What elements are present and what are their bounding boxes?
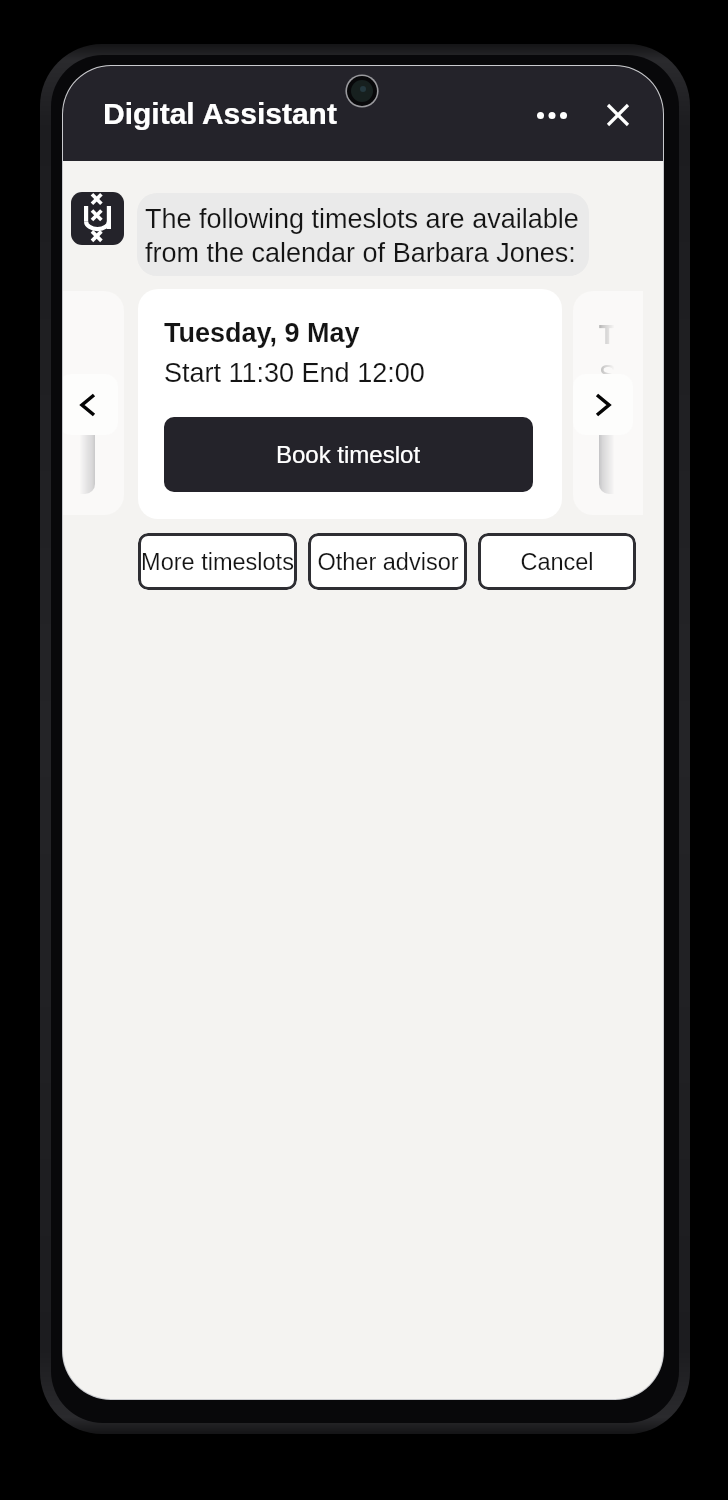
button[interactable]: Cancel xyxy=(478,533,636,590)
button[interactable]: More timeslots xyxy=(138,533,297,590)
staticText: Start 11:30 End 12:00 xyxy=(164,358,425,388)
button[interactable]: Close xyxy=(594,91,642,139)
button[interactable]: More options xyxy=(528,91,576,139)
staticText: Tuesday, 9 May xyxy=(599,320,643,350)
staticText: Digital Assistant xyxy=(103,97,337,131)
staticText: Book timeslot xyxy=(276,441,421,468)
staticText: Tuesday, 9 May xyxy=(164,318,360,348)
button[interactable]: Previous timeslot xyxy=(63,374,118,435)
staticText: Start 11:30 End 12:00 xyxy=(599,360,643,390)
staticText: The following timeslots are available fr… xyxy=(145,204,579,268)
button[interactable]: Book timeslot xyxy=(164,417,533,492)
button[interactable]: Other advisor xyxy=(308,533,467,590)
staticText: Other advisor xyxy=(317,549,459,575)
staticText: More timeslots xyxy=(141,549,294,575)
button[interactable]: Next timeslot xyxy=(573,374,633,435)
staticText: Cancel xyxy=(520,549,594,575)
